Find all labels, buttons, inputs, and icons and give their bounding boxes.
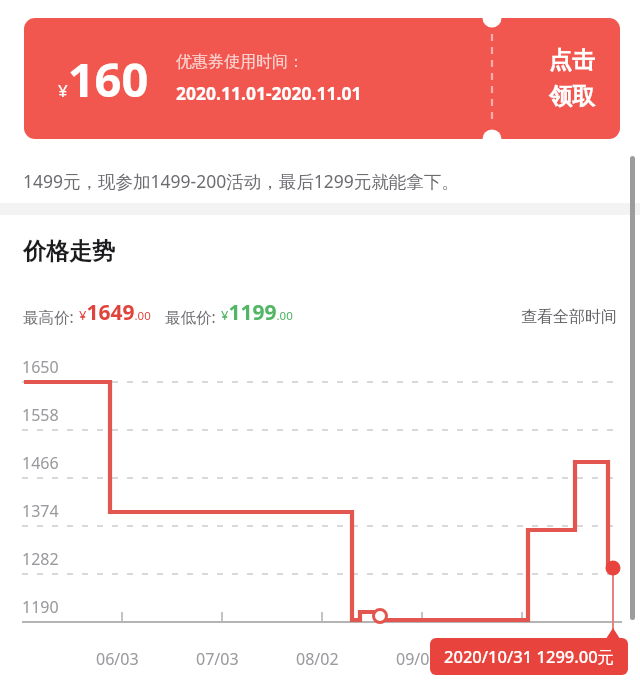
staticText: 1558 xyxy=(22,404,59,426)
staticText: 最低价: xyxy=(165,306,216,327)
staticText: 1499元，现参加1499-200活动，最后1299元就能拿下。 xyxy=(23,169,459,193)
staticText: ¥1199.00 xyxy=(221,298,293,327)
staticText: 07/03 xyxy=(196,648,239,670)
staticText: 查看全部时间 xyxy=(521,307,617,327)
staticText: 最高价: xyxy=(23,306,74,327)
staticText: ¥1649.00 xyxy=(79,298,151,327)
staticText: 1374 xyxy=(22,500,59,522)
staticText: 2020/10/31 1299.00元 xyxy=(444,645,615,668)
button[interactable]: ¥160 xyxy=(24,18,620,139)
staticText: 1190 xyxy=(22,596,59,618)
staticText: 价格走势 xyxy=(23,237,115,266)
button[interactable]: 查看全部时间 xyxy=(521,307,617,327)
button[interactable]: 2020/10/31 1299.00元 xyxy=(430,638,628,675)
staticText: ¥160 xyxy=(58,47,149,111)
staticText: 09/01 xyxy=(396,648,439,670)
staticText: 06/03 xyxy=(96,648,139,670)
staticText: 1466 xyxy=(22,452,59,474)
staticText: 1282 xyxy=(22,548,59,570)
staticText: 优惠券使用时间： xyxy=(176,52,304,72)
staticText: 08/02 xyxy=(296,648,339,670)
button[interactable]: 点击 xyxy=(524,18,620,139)
staticText: 领取 xyxy=(549,82,595,111)
staticText: 点击 xyxy=(549,46,595,75)
staticText: 1650 xyxy=(22,356,59,378)
staticText: 2020.11.01-2020.11.01 xyxy=(176,81,362,105)
